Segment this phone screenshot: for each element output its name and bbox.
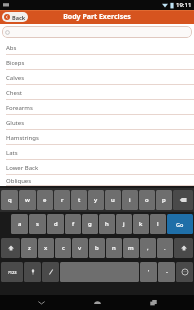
button[interactable]: o [139, 190, 155, 210]
staticText: l [157, 220, 159, 228]
staticText: Go [176, 221, 184, 228]
button[interactable]: Home [82, 295, 112, 310]
button[interactable]: m [123, 238, 139, 258]
staticText: f [72, 220, 75, 228]
button[interactable]: . [157, 238, 173, 258]
button[interactable]: Shift [1, 238, 20, 258]
staticText: j [123, 220, 125, 228]
button[interactable]: q [1, 190, 18, 210]
button[interactable]: Obliques [0, 175, 194, 186]
button[interactable]: w [19, 190, 36, 210]
button[interactable]: i [122, 190, 138, 210]
button[interactable]: - [158, 262, 175, 282]
button[interactable]: Back [26, 295, 56, 310]
button[interactable]: y [88, 190, 104, 210]
button[interactable]: Glutes [0, 115, 194, 130]
staticText: ' [148, 268, 150, 276]
staticText: ?123 [8, 270, 17, 275]
button[interactable]: z [21, 238, 37, 258]
staticText: Body Part Exercises [63, 12, 131, 22]
staticText: Calves [6, 74, 25, 82]
staticText: d [54, 220, 58, 228]
button[interactable]: l [150, 214, 166, 234]
button[interactable]: Back [2, 12, 28, 22]
staticText: s [36, 220, 39, 228]
button[interactable]: Handwriting [42, 262, 59, 282]
button[interactable]: v [72, 238, 88, 258]
staticText: m [128, 244, 134, 252]
staticText: Glutes [6, 119, 25, 127]
button[interactable]: t [71, 190, 87, 210]
staticText: Back [12, 14, 26, 21]
button[interactable]: Lower Back [0, 160, 194, 175]
button[interactable]: a [11, 214, 28, 234]
button[interactable]: Calves [0, 70, 194, 85]
staticText: q [8, 196, 12, 204]
button[interactable]: k [133, 214, 149, 234]
staticText: v [78, 244, 82, 252]
button[interactable]: Hamstrings [0, 130, 194, 145]
staticText: c [62, 244, 65, 252]
button[interactable]: Recent apps [138, 295, 168, 310]
staticText: p [162, 196, 166, 204]
button[interactable]: ' [140, 262, 157, 282]
button[interactable]: f [65, 214, 81, 234]
staticText: e [43, 196, 47, 204]
staticText: g [88, 220, 92, 228]
button[interactable]: h [99, 214, 115, 234]
staticText: - [166, 268, 168, 276]
button[interactable]: c [55, 238, 71, 258]
staticText: r [61, 196, 64, 204]
staticText: b [95, 244, 99, 252]
staticText: Obliques [6, 177, 32, 185]
button[interactable]: n [106, 238, 122, 258]
button[interactable]: , [140, 238, 156, 258]
staticText: Lats [6, 149, 18, 157]
button[interactable]: d [47, 214, 64, 234]
staticText: w [25, 196, 30, 204]
button[interactable]: r [54, 190, 70, 210]
button[interactable]: Shift [174, 238, 193, 258]
staticText: Hamstrings [6, 134, 39, 142]
staticText: Biceps [6, 59, 25, 67]
staticText: y [94, 196, 98, 204]
staticText: z [28, 244, 31, 252]
button[interactable]: Emoji [176, 262, 193, 282]
staticText: a [18, 220, 22, 228]
button[interactable]: ?123 [1, 262, 23, 282]
staticText: Chest [6, 89, 22, 97]
button[interactable]: Voice input [24, 262, 41, 282]
button[interactable]: Forearms [0, 100, 194, 115]
staticText: i [129, 196, 131, 204]
staticText: k [139, 220, 143, 228]
button[interactable] [2, 26, 192, 38]
button[interactable]: u [105, 190, 121, 210]
button[interactable]: s [29, 214, 46, 234]
staticText: Abs [6, 44, 17, 52]
staticText: Lower Back [6, 164, 39, 172]
button[interactable]: Lats [0, 145, 194, 160]
button[interactable]: Biceps [0, 55, 194, 70]
button[interactable]: Delete [173, 190, 193, 210]
staticText: t [78, 196, 81, 204]
button[interactable]: Chest [0, 85, 194, 100]
button[interactable]: e [37, 190, 53, 210]
button[interactable]: x [38, 238, 54, 258]
button[interactable]: b [89, 238, 105, 258]
staticText: o [145, 196, 149, 204]
staticText: h [105, 220, 109, 228]
button[interactable]: Go [167, 214, 193, 234]
staticText: u [111, 196, 115, 204]
button[interactable]: j [116, 214, 132, 234]
staticText: . [164, 244, 166, 252]
staticText: 19:11 [176, 1, 192, 9]
button[interactable]: g [82, 214, 98, 234]
staticText: x [44, 244, 48, 252]
staticText: , [147, 244, 149, 252]
button[interactable]: p [156, 190, 172, 210]
button[interactable]: Abs [0, 40, 194, 55]
staticText: Forearms [6, 104, 33, 112]
staticText: n [112, 244, 116, 252]
